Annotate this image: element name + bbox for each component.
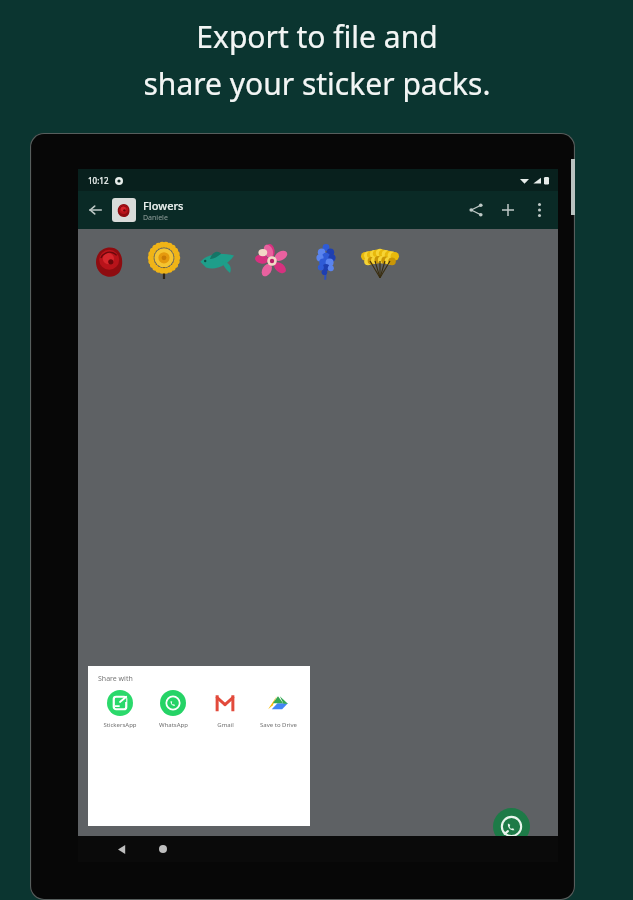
staticText: StickersApp [103, 721, 137, 729]
button[interactable]: Sunflower sticker [142, 239, 186, 283]
staticText: share your sticker packs. [143, 63, 491, 104]
button[interactable]: Back [78, 193, 112, 227]
button[interactable]: Hyacinth sticker [304, 239, 348, 283]
staticText: Export to file and [196, 16, 438, 57]
button[interactable]: Leaf sticker [196, 239, 240, 283]
staticText: Save to Drive [260, 721, 297, 729]
button[interactable]: Share to WhatsApp [493, 808, 530, 845]
button[interactable]: Rose sticker [88, 239, 132, 283]
button[interactable]: Save to Drive [253, 688, 303, 731]
button[interactable]: More options [524, 195, 554, 225]
button[interactable]: Back [102, 836, 142, 862]
staticText: Gmail [217, 721, 234, 729]
button[interactable]: Home [143, 836, 183, 862]
staticText: WhatsApp [159, 721, 188, 729]
button[interactable]: WhatsApp [148, 688, 198, 731]
button[interactable]: Gmail [200, 688, 250, 731]
button[interactable]: StickersApp [95, 688, 145, 731]
button[interactable]: Orchid sticker [250, 239, 294, 283]
staticText: 10:12 [88, 175, 109, 186]
button[interactable]: Tulip bunch sticker [358, 239, 402, 283]
button[interactable]: Share [460, 194, 492, 226]
button[interactable]: Add sticker [492, 194, 524, 226]
staticText: Flowers [143, 198, 184, 213]
staticText: Daniele [143, 213, 168, 223]
staticText: Share with [98, 674, 133, 684]
